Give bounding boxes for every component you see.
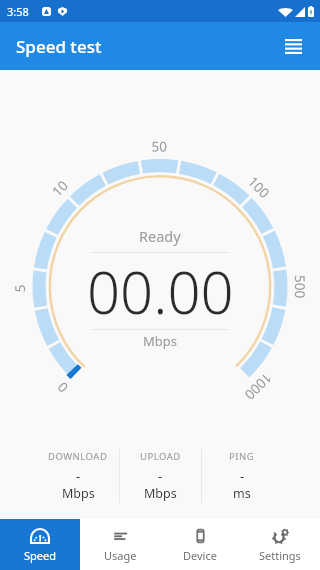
staticText: Speed <box>24 548 56 563</box>
button[interactable]: Speed <box>0 519 80 570</box>
staticText: 3:58 <box>7 4 29 19</box>
staticText: 00.00 <box>87 252 234 331</box>
staticText: ms <box>233 485 251 502</box>
staticText: - <box>158 467 163 485</box>
staticText: Mbps <box>144 485 177 502</box>
staticText: - <box>240 467 245 485</box>
staticText: Ready <box>139 226 181 246</box>
staticText: Mbps <box>62 485 95 502</box>
button[interactable]: Settings <box>240 519 320 570</box>
button[interactable]: Device <box>160 519 240 570</box>
button[interactable]: Menu <box>273 26 313 66</box>
staticText: - <box>76 467 81 485</box>
staticText: Usage <box>104 548 137 563</box>
staticText: Device <box>183 548 217 563</box>
button[interactable]: Usage <box>80 519 160 570</box>
staticText: PING <box>229 450 255 463</box>
staticText: Speed test <box>16 35 102 58</box>
staticText: Mbps <box>143 332 178 350</box>
staticText: Settings <box>259 548 301 563</box>
staticText: UPLOAD <box>140 450 181 463</box>
staticText: DOWNLOAD <box>48 450 108 463</box>
